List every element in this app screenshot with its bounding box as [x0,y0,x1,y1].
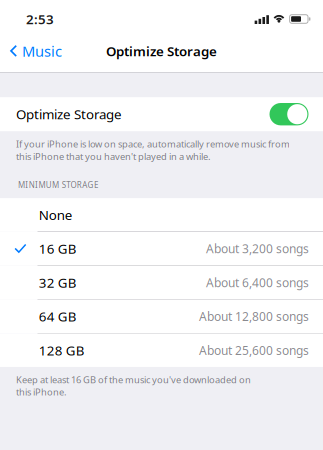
staticText: 16 GB [39,240,77,257]
staticText: About 12,800 songs [199,308,309,324]
button[interactable]: None [0,198,323,231]
staticText: Music [22,41,62,61]
staticText: 2:53 [26,10,54,28]
button[interactable]: Music [0,34,70,68]
staticText: 32 GB [39,274,77,291]
button[interactable]: 64 GB [0,300,323,333]
button[interactable]: 128 GB [0,334,323,367]
staticText: 64 GB [39,308,77,325]
staticText: If your iPhone is low on space, automati… [16,138,290,162]
staticText: Optimize Storage [106,42,217,60]
button[interactable]: 16 GB [0,232,323,265]
staticText: About 3,200 songs [206,241,309,256]
staticText: Keep at least 16 GB of the music you've … [16,373,251,398]
button[interactable]: 32 GB [0,266,323,299]
staticText: 128 GB [39,341,85,359]
staticText: Optimize Storage [16,105,122,123]
staticText: About 25,600 songs [199,342,309,358]
staticText: None [39,206,73,224]
staticText: About 6,400 songs [206,274,309,290]
staticText: MINIMUM STORAGE [18,179,98,190]
